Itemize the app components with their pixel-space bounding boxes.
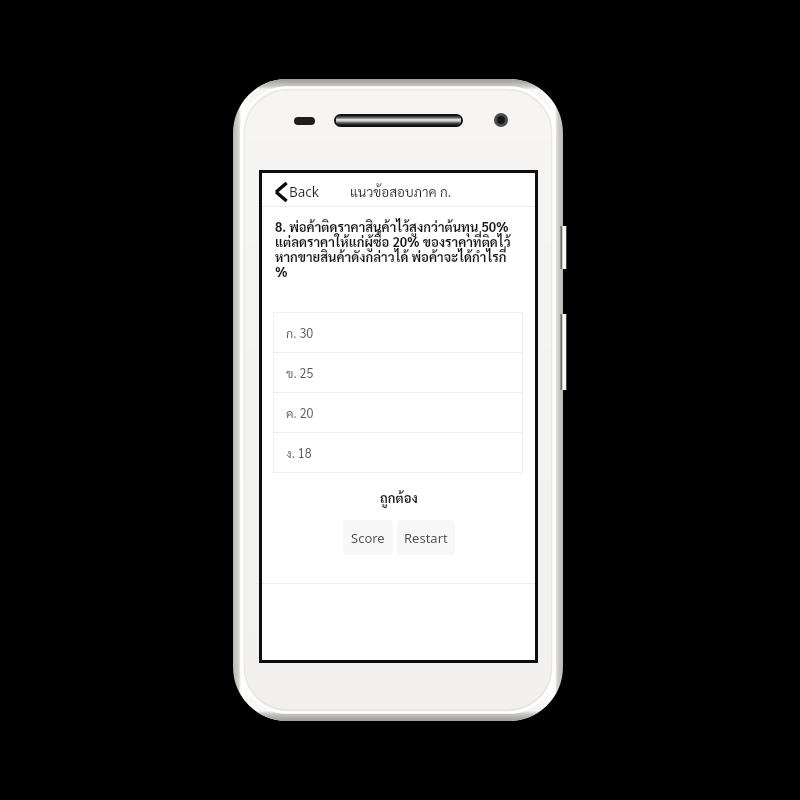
button[interactable]: ก. 30 (274, 313, 522, 352)
staticText: ถูกต้อง (380, 489, 418, 506)
button[interactable]: ง. 18 (274, 433, 522, 472)
staticText: Back (289, 183, 320, 201)
staticText: ง. 18 (286, 445, 312, 461)
button[interactable]: ข. 25 (274, 353, 522, 392)
button[interactable]: Back (262, 175, 328, 208)
staticText: ข. 25 (286, 365, 314, 381)
button[interactable]: Score (343, 520, 393, 555)
other: Back (274, 181, 287, 203)
staticText: Restart (404, 529, 448, 547)
staticText: ก. 30 (286, 325, 314, 341)
button[interactable]: ค. 20 (274, 393, 522, 432)
staticText: 8. พ่อค้าติดราคาสินค้าไว้สูงกว่าต้นทุน 5… (275, 218, 518, 280)
button[interactable]: Restart (397, 520, 455, 555)
staticText: Score (351, 529, 385, 547)
staticText: ค. 20 (286, 405, 314, 421)
staticText: แนวข้อสอบภาค ก. (350, 183, 452, 201)
